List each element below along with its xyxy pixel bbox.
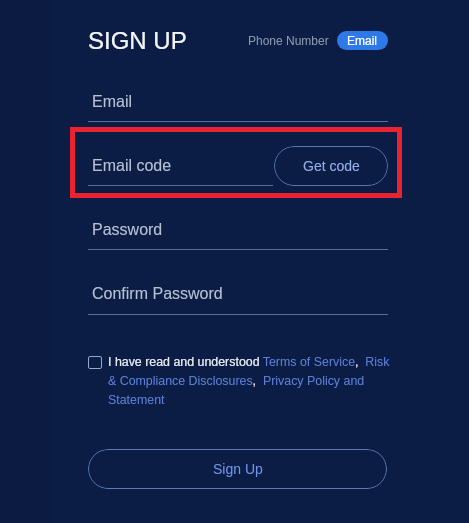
staticText: Email: [347, 34, 378, 47]
staticText: SIGN UP: [88, 27, 187, 54]
button[interactable]: Sign Up: [88, 449, 387, 489]
staticText: Sign Up: [213, 461, 263, 477]
staticText: Get code: [303, 158, 360, 174]
staticText: Password: [92, 221, 163, 239]
button[interactable]: Confirm Password: [88, 275, 388, 316]
button[interactable]: Accept terms and conditions: [88, 356, 102, 369]
staticText: Email: [92, 93, 133, 111]
staticText: Phone Number: [248, 34, 329, 47]
button[interactable]: Email: [337, 31, 388, 50]
button[interactable]: Email: [88, 83, 388, 123]
staticText: I have read and understood Terms of Serv…: [108, 355, 398, 407]
button[interactable]: Password: [88, 211, 388, 251]
button[interactable]: Phone Number: [246, 31, 331, 50]
button[interactable]: Email code: [88, 147, 273, 187]
staticText: Confirm Password: [92, 285, 223, 303]
button[interactable]: I have read and understood Terms of Serv…: [108, 355, 398, 407]
button[interactable]: Get code: [274, 146, 388, 186]
staticText: Email code: [92, 157, 172, 175]
